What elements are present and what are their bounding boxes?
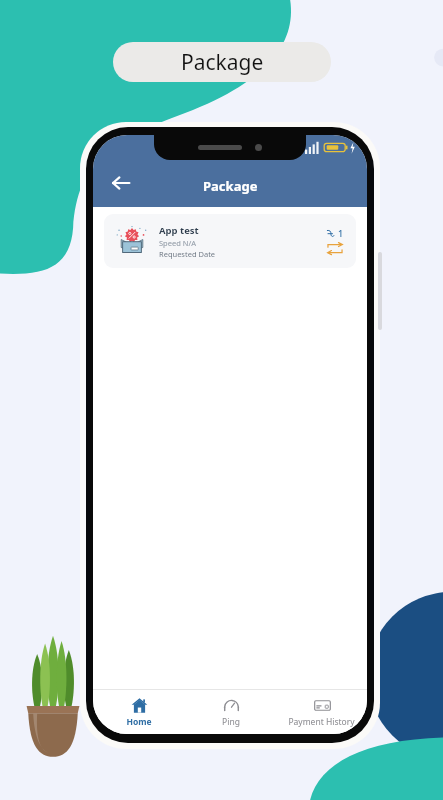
staticText: Package — [181, 48, 264, 77]
staticText: Speed N/A — [159, 238, 197, 248]
button[interactable]: Package — [113, 42, 331, 82]
staticText: Home — [126, 716, 152, 728]
button[interactable]: Ping — [185, 690, 276, 734]
button[interactable]: Payment History — [276, 690, 367, 734]
staticText: Payment History — [288, 716, 355, 728]
button[interactable]: App test — [104, 214, 356, 268]
staticText: Package — [203, 177, 258, 195]
staticText: 1 — [338, 227, 344, 239]
button[interactable]: Home — [93, 690, 185, 734]
staticText: Requested Date — [159, 249, 216, 259]
staticText: Ping — [222, 716, 240, 728]
staticText: App test — [159, 224, 199, 237]
button[interactable]: Back — [101, 163, 141, 203]
